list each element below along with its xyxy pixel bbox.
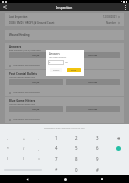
staticText: Number <box>106 21 117 25</box>
staticText: * <box>7 146 9 151</box>
staticText: Add Page <box>88 108 98 111</box>
button[interactable]: Done <box>67 68 81 72</box>
button[interactable]: Home <box>55 175 75 183</box>
staticText: 4 <box>55 145 58 151</box>
staticText: # <box>96 167 99 173</box>
button[interactable]: ) <box>16 153 31 164</box>
staticText: / <box>23 146 25 151</box>
staticText: ) <box>23 156 25 161</box>
staticText: * <box>55 167 58 173</box>
staticText: Add the relevant fields here <box>9 103 35 106</box>
button[interactable]: Enter <box>116 146 121 151</box>
staticText: Add Details and Comments <box>13 91 40 94</box>
staticText: Answers <box>9 45 22 49</box>
button[interactable]: Add Job <box>9 106 63 112</box>
button[interactable]: 1 <box>46 133 66 143</box>
staticText: Rate the items (1 to 5) / add notes <box>9 49 41 52</box>
staticText: Done <box>71 69 77 72</box>
button[interactable]: Add Page <box>66 106 120 112</box>
staticText: - <box>7 136 9 141</box>
staticText: 0 <box>49 61 51 64</box>
button[interactable]: Add Page <box>66 79 120 85</box>
staticText: ( <box>7 156 9 161</box>
button[interactable]: 6 <box>87 143 108 153</box>
button[interactable]: ( <box>0 153 16 164</box>
staticText: Wound Healing <box>9 33 30 37</box>
button[interactable]: Cancel <box>50 68 62 72</box>
button[interactable]: 0 <box>48 60 64 65</box>
staticText: Add the relevant fields here <box>9 76 35 79</box>
button[interactable]: = <box>31 153 46 164</box>
staticText: cm <box>65 61 68 64</box>
button[interactable]: * <box>46 164 66 175</box>
staticText: Add Job <box>32 108 40 111</box>
staticText: 5 <box>75 145 78 151</box>
staticText: Last Inspection <box>9 15 28 19</box>
staticText: 9 <box>96 156 99 162</box>
button[interactable]: 2 <box>66 133 87 143</box>
button[interactable]: Backspace <box>114 134 123 143</box>
button[interactable]: Share <box>0 3 10 11</box>
button[interactable]: * <box>0 143 16 153</box>
button[interactable]: Add Details and Comments <box>5 62 124 69</box>
button[interactable]: 9 <box>87 153 108 164</box>
button[interactable]: 3 <box>87 133 108 143</box>
button[interactable]: Recents <box>92 175 112 183</box>
staticText: DOB / EMD / HRGPS J# Ground Count <box>9 21 55 25</box>
staticText: Add Page <box>88 54 98 57</box>
staticText: 3 <box>96 135 99 141</box>
button[interactable]: More options <box>121 3 129 11</box>
staticText: 7 <box>55 156 58 162</box>
button[interactable]: Wound Healing <box>5 30 124 40</box>
staticText: Add Job <box>32 81 40 84</box>
staticText: Add Details and Comments <box>13 118 40 121</box>
button[interactable]: Back <box>17 175 37 183</box>
staticText: , <box>38 146 39 151</box>
button[interactable]: Add Page <box>66 52 120 58</box>
staticText: = <box>38 156 40 161</box>
staticText: Add Job <box>32 54 40 57</box>
button[interactable]: # <box>87 164 108 175</box>
staticText: 8 <box>75 156 78 162</box>
staticText: + <box>23 136 25 141</box>
button[interactable]: Last Inspection <box>9 15 120 19</box>
button[interactable]: 7 <box>46 153 66 164</box>
staticText: 2 <box>75 135 78 141</box>
button[interactable]: 8 <box>66 153 87 164</box>
staticText: Cancel <box>53 69 60 72</box>
staticText: Add Page <box>88 81 98 84</box>
staticText: Inspection <box>56 5 73 9</box>
button[interactable]: / <box>16 143 31 153</box>
button[interactable]: 4 <box>46 143 66 153</box>
button[interactable]: 0 <box>66 164 87 175</box>
button[interactable]: DOB / EMD / HRGPS J# Ground Count <box>9 21 120 25</box>
button[interactable]: Add Job <box>9 52 63 58</box>
staticText: Blue Game Hitters <box>9 99 36 103</box>
button[interactable]: 5 <box>66 143 87 153</box>
button[interactable]: + <box>16 133 31 143</box>
staticText: 6 <box>96 145 99 151</box>
button[interactable]: Add Details and Comments <box>5 116 124 123</box>
staticText: 1 <box>55 135 58 141</box>
button[interactable]: Add Job <box>9 79 63 85</box>
staticText: Post Cranial Bullets <box>9 72 37 76</box>
staticText: . <box>38 136 39 141</box>
staticText: 12/03/2021 <box>103 15 117 19</box>
staticText: Answers <box>49 52 60 56</box>
staticText: Left Measurement <box>49 56 67 59</box>
staticText: Add Details and Comments <box>13 64 40 67</box>
staticText: Suggestions aren't available. Touch for … <box>44 127 85 130</box>
button[interactable]: Add Details and Comments <box>5 89 124 96</box>
staticText: 0 <box>75 167 78 173</box>
